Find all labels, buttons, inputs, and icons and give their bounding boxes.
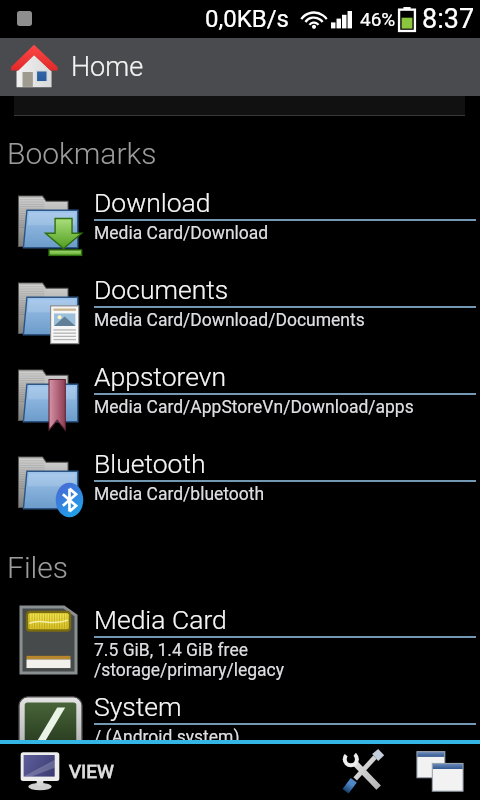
staticText: 46% [360, 8, 396, 30]
button[interactable]: Appstorevn [0, 360, 480, 447]
button[interactable]: VIEW [0, 744, 135, 800]
staticText: Bluetooth [94, 448, 206, 479]
staticText: VIEW [69, 760, 114, 782]
staticText: 7.5 GiB, 1.4 GiB free [94, 640, 248, 661]
staticText: 8:37 [422, 3, 475, 35]
button[interactable]: Media Card [0, 603, 480, 690]
button[interactable]: Home [0, 38, 480, 96]
button[interactable]: Tools [331, 744, 395, 800]
staticText: 0,0KB/s [205, 5, 289, 33]
button[interactable]: System [0, 690, 480, 777]
button[interactable]: Bluetooth [0, 447, 480, 534]
button[interactable]: Windows [407, 744, 473, 800]
staticText: Media Card [94, 604, 227, 635]
staticText: Appstorevn [94, 361, 227, 392]
button[interactable]: Download [0, 186, 480, 273]
staticText: Download [94, 187, 211, 218]
staticText: System [94, 691, 182, 722]
staticText: /storage/primary/legacy [94, 660, 285, 681]
staticText: Media Card/Download/Documents [94, 310, 365, 331]
staticText: Media Card/AppStoreVn/Download/apps [94, 397, 414, 418]
staticText: Files [7, 550, 69, 585]
staticText: Media Card/bluetooth [94, 484, 265, 505]
staticText: Documents [94, 274, 229, 305]
staticText: Home [71, 51, 144, 83]
staticText: Bookmarks [7, 136, 157, 171]
button[interactable]: Documents [0, 273, 480, 360]
staticText: / (Android system) [94, 727, 240, 748]
staticText: Media Card/Download [94, 223, 269, 244]
